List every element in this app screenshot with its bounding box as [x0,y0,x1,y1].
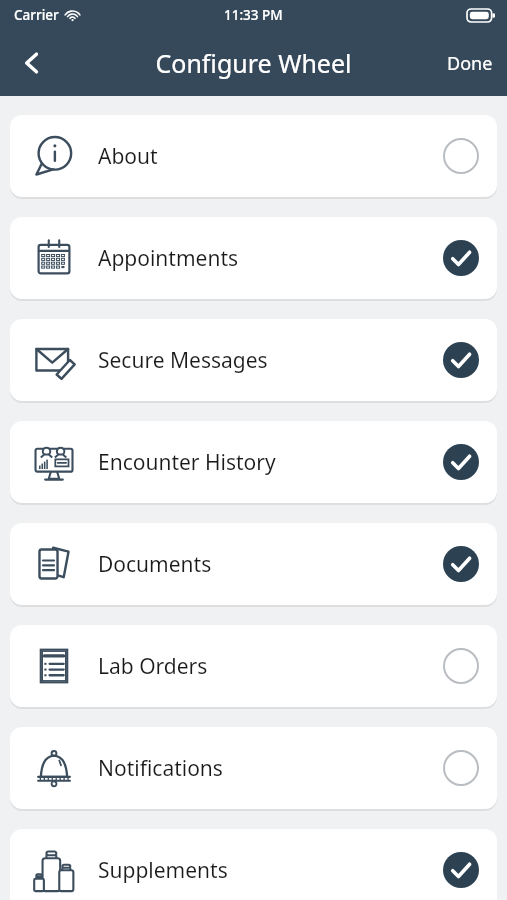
staticText: 11:33 PM [224,6,283,24]
staticText: Documents [98,550,443,579]
staticText: Notifications [98,754,443,783]
staticText: Done [447,51,493,76]
staticText: Encounter History [98,448,443,477]
button[interactable]: Documents [10,523,497,605]
button[interactable]: Secure Messages [10,319,497,401]
staticText: Carrier [14,6,59,24]
button[interactable]: Done [433,41,507,86]
staticText: Lab Orders [98,652,443,681]
button[interactable]: Lab Orders [10,625,497,707]
button[interactable]: Appointments [10,217,497,299]
button[interactable]: Encounter History [10,421,497,503]
button[interactable]: About [10,115,497,197]
button[interactable]: Supplements [10,829,497,900]
staticText: Appointments [98,244,443,273]
staticText: Configure Wheel [155,46,352,80]
staticText: Secure Messages [98,346,443,375]
staticText: Supplements [98,856,443,885]
button[interactable]: Back [6,37,58,89]
staticText: About [98,142,443,171]
button[interactable]: Notifications [10,727,497,809]
